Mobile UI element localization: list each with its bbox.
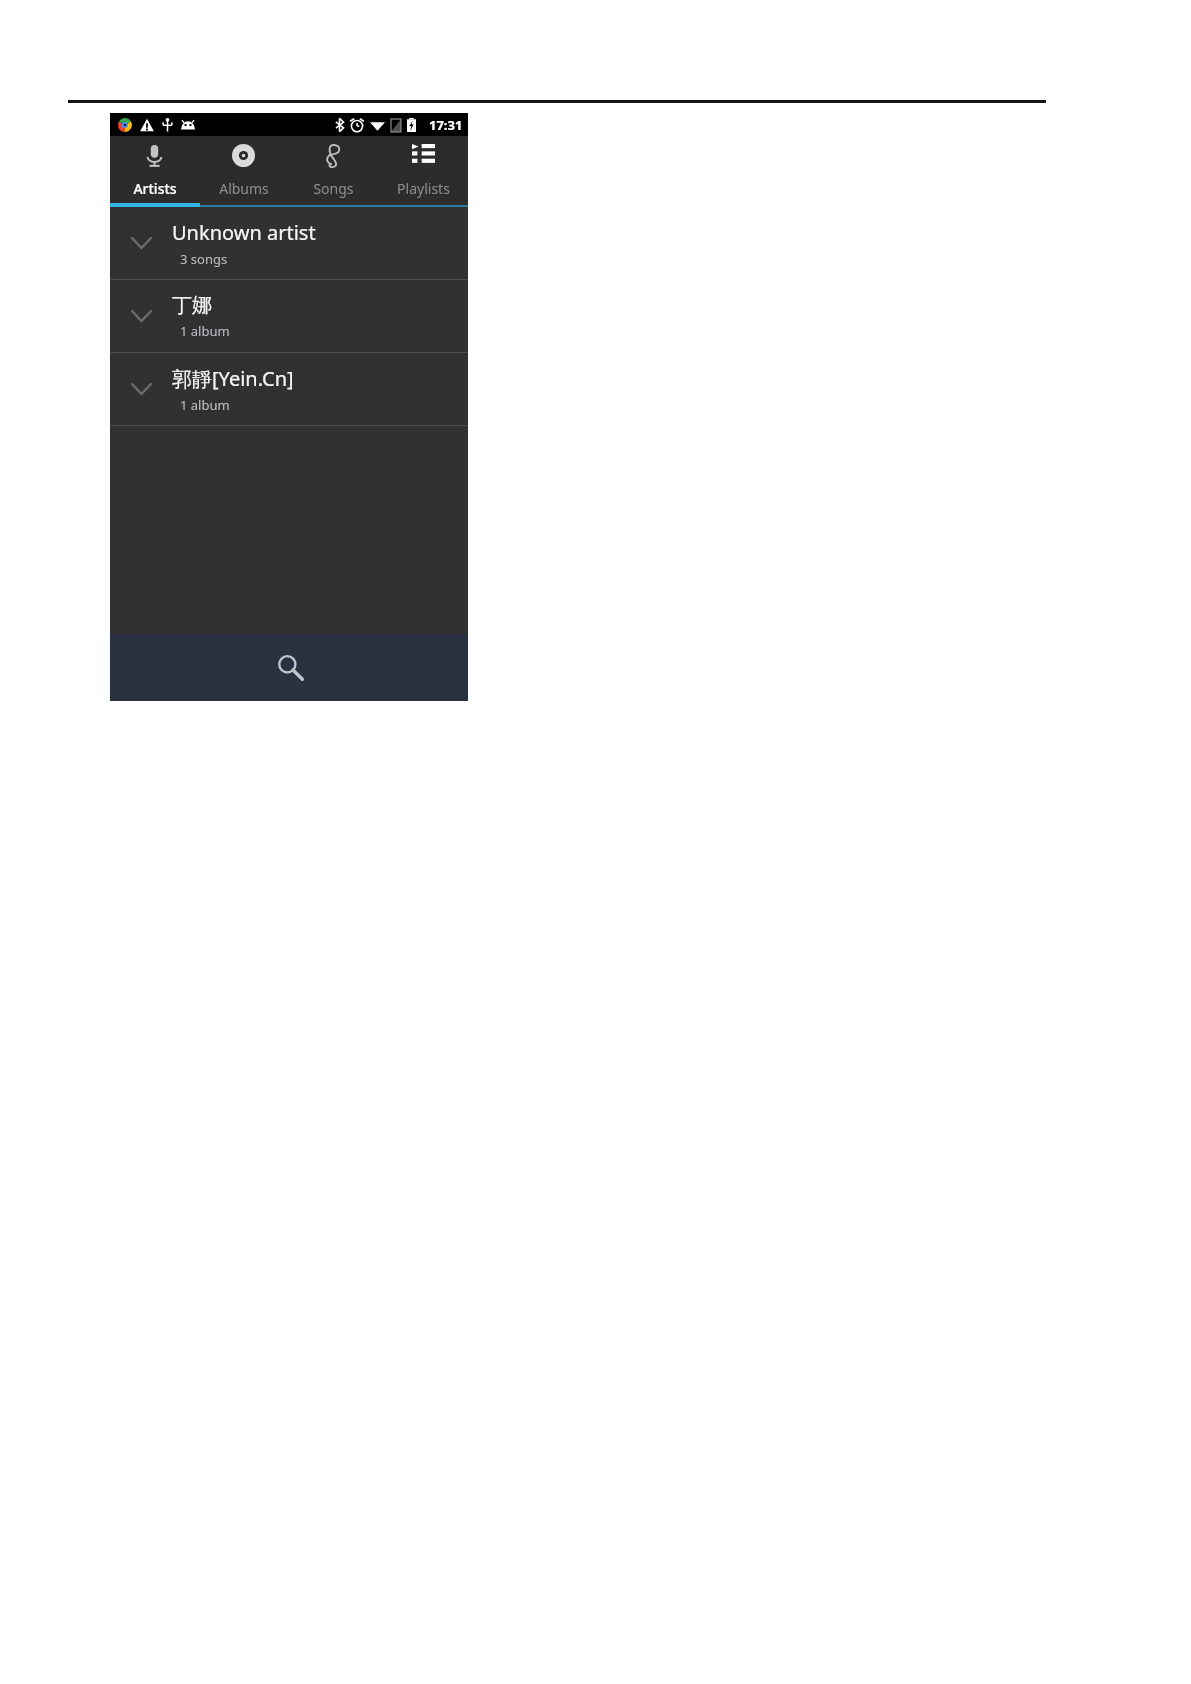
staticText: Songs [313, 179, 354, 198]
button[interactable]: Unknown artist [110, 207, 468, 279]
staticText: 1 album [180, 396, 230, 414]
button[interactable]: Artists [110, 136, 199, 203]
button[interactable]: 郭靜[Yein.Cn] [110, 353, 468, 425]
staticText: 丁娜 [172, 293, 212, 318]
button[interactable]: Songs [288, 136, 378, 203]
staticText: 1 album [180, 322, 230, 340]
staticText: 郭靜[Yein.Cn] [172, 365, 294, 392]
staticText: Playlists [397, 179, 450, 198]
button[interactable]: 丁娜 [110, 280, 468, 352]
staticText: 17:31 [429, 116, 463, 134]
staticText: 3 songs [180, 250, 228, 268]
staticText: Albums [219, 179, 269, 198]
button[interactable]: Playlists [378, 136, 468, 203]
staticText: Unknown artist [172, 219, 316, 246]
staticText: Artists [133, 179, 177, 198]
button[interactable]: Albums [199, 136, 288, 203]
button[interactable]: Search [110, 634, 468, 701]
